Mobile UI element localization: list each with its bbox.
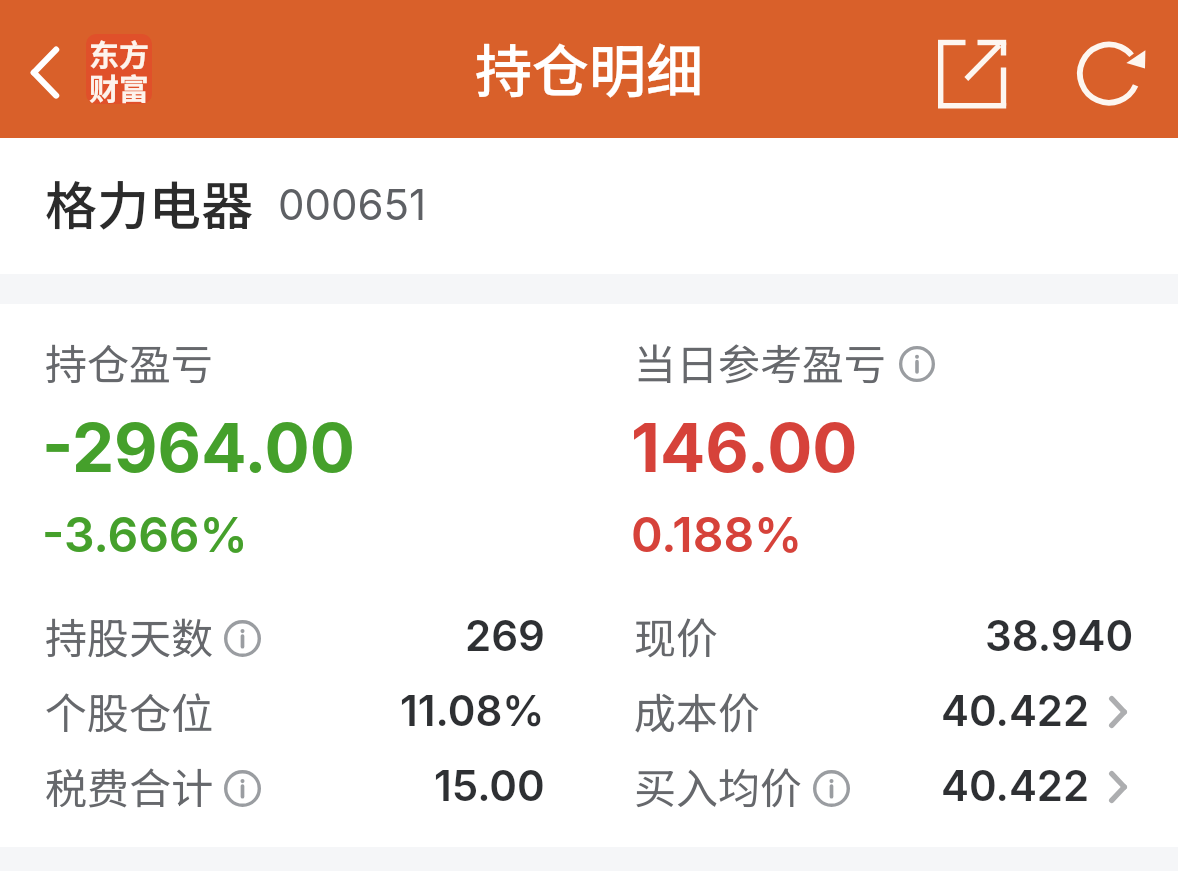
button[interactable]: 税费合计 [45,748,545,823]
staticText: 40.422 [941,760,1090,811]
button[interactable]: 现价 [634,598,1134,673]
staticText: 40.422 [941,685,1090,736]
staticText: 个股仓位 [45,680,214,741]
button[interactable]: East Money logo [86,34,152,104]
staticText: -3.666% [42,505,248,563]
staticText: 146.00 [631,407,858,488]
staticText: 税费合计 [45,755,214,816]
staticText: 现价 [634,605,719,666]
staticText: 成本价 [634,680,761,741]
staticText: 15.00 [434,760,545,811]
staticText: 东方 [89,34,149,74]
button[interactable]: 成本价 [634,673,1134,748]
button[interactable]: 持股天数 [45,598,545,673]
staticText: 持仓盈亏 [45,331,214,392]
staticText: 持股天数 [45,605,214,666]
staticText: 格力电器 [45,165,254,240]
staticText: 买入均价 [634,755,803,816]
button[interactable]: Share [920,19,1020,119]
button[interactable]: 买入均价 [634,748,1134,823]
staticText: 当日参考盈亏 [634,331,887,392]
staticText: 0.188% [631,505,803,563]
staticText: 财富 [89,65,149,104]
staticText: -2964.00 [42,407,355,488]
staticText: 000651 [278,179,427,230]
staticText: 11.08% [400,685,545,736]
button[interactable]: Refresh [1060,19,1160,119]
staticText: 持仓明细 [475,26,703,109]
button[interactable]: Back [7,24,83,114]
staticText: 269 [465,610,545,661]
staticText: 38.940 [985,610,1134,661]
button[interactable]: 个股仓位 [45,673,545,748]
